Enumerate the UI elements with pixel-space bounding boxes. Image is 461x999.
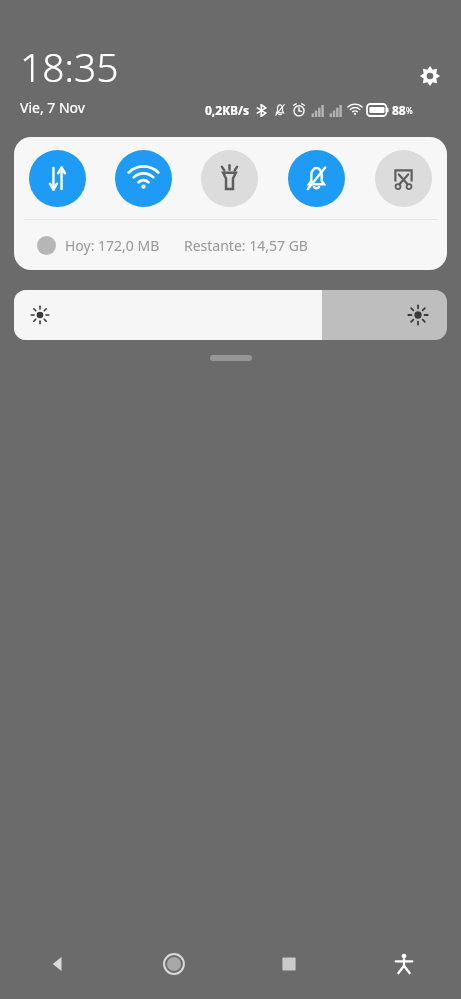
button[interactable] — [14, 290, 447, 340]
button[interactable]: Home — [116, 929, 231, 999]
staticText: Vie, 7 Nov — [20, 98, 85, 117]
button[interactable]: Screenshot — [360, 137, 447, 219]
staticText: Hoy: 172,0 MB — [65, 236, 160, 255]
button[interactable]: Accessibility — [346, 929, 461, 999]
button[interactable]: Silent mode — [273, 137, 360, 219]
staticText: 18:35 — [20, 40, 119, 93]
button[interactable]: Wi-Fi — [100, 137, 186, 219]
button[interactable]: Mobile data — [14, 137, 100, 219]
button[interactable]: Settings — [410, 56, 450, 96]
button[interactable]: Recents — [231, 929, 346, 999]
button[interactable]: Hoy: 172,0 MB — [14, 220, 447, 270]
button[interactable]: Back — [0, 929, 116, 999]
staticText: 88 — [392, 102, 406, 118]
button[interactable]: Flashlight — [186, 137, 273, 219]
staticText: Restante: 14,57 GB — [184, 236, 308, 255]
staticText: 0,2KB/s — [205, 102, 250, 118]
staticText: % — [406, 105, 413, 116]
